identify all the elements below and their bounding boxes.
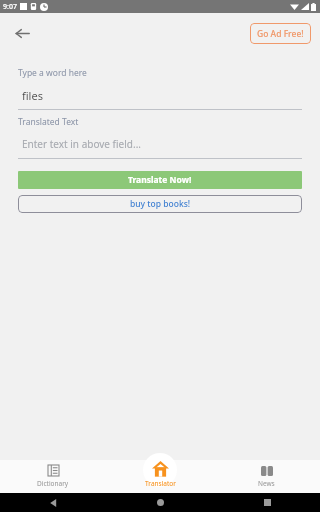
staticText: buy top books! (130, 198, 191, 210)
button[interactable] (143, 453, 177, 487)
staticText: Translator (145, 479, 176, 488)
button[interactable]: Home (150, 493, 170, 512)
button[interactable]: buy top books! (18, 195, 302, 213)
staticText: 9:07 (3, 2, 17, 12)
staticText: Type a word here (18, 67, 87, 79)
button[interactable]: Back (8, 19, 36, 47)
button[interactable]: Back (43, 493, 63, 512)
button[interactable]: News (213, 460, 320, 493)
button[interactable]: Dictionary (0, 460, 106, 493)
staticText: Enter text in above field... (22, 137, 141, 151)
button[interactable]: Recent apps (257, 493, 277, 512)
staticText: News (258, 479, 275, 488)
button[interactable]: Go Ad Free! (250, 23, 311, 44)
staticText: Translated Text (18, 116, 79, 128)
staticText: files (22, 88, 43, 103)
staticText: Translate Now! (128, 174, 192, 186)
staticText: Dictionary (37, 479, 69, 488)
staticText: Go Ad Free! (257, 28, 304, 40)
button[interactable]: Translate Now! (18, 171, 302, 189)
